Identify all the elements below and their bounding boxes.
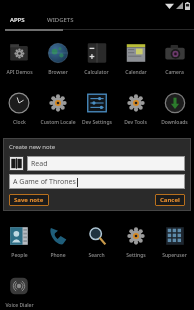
button[interactable]: Settings [116, 219, 155, 261]
button[interactable]: Voice Dialer [0, 269, 38, 310]
staticText: Voice Dialer [5, 302, 34, 308]
button[interactable]: Dev Tools [116, 86, 155, 128]
staticText: Search [88, 252, 105, 259]
button[interactable]: People [0, 219, 38, 261]
staticText: Phone [50, 252, 66, 259]
staticText: People [11, 252, 28, 259]
staticText: Cancel [160, 196, 180, 204]
staticText: APPS [10, 16, 25, 24]
staticText: API Demos [6, 69, 33, 76]
button[interactable]: Read [27, 156, 185, 171]
staticText: Downloads [161, 119, 188, 126]
button[interactable]: Custom Locale [38, 86, 77, 128]
staticText: Custom Locale [40, 119, 76, 126]
staticText: Calendar [125, 69, 147, 76]
staticText: Dev Settings [82, 119, 112, 126]
button[interactable]: Superuser [155, 219, 194, 261]
button[interactable]: Downloads [155, 86, 194, 128]
button[interactable]: Cancel [155, 194, 185, 206]
button[interactable]: Phone [38, 219, 77, 261]
button[interactable]: APPS [10, 16, 25, 24]
staticText: Camera [165, 69, 184, 76]
staticText: Superuser [162, 252, 187, 259]
staticText: A Game of Thrones [13, 177, 76, 187]
button[interactable]: Search [77, 219, 116, 261]
staticText: Dev Tools [124, 119, 147, 126]
button[interactable]: A Game of Thrones [9, 174, 185, 189]
staticText: WIDGETS [47, 16, 74, 24]
staticText: Clock [13, 119, 26, 126]
button[interactable]: Save note [9, 194, 49, 206]
button[interactable]: Camera [155, 36, 194, 78]
button[interactable]: WIDGETS [47, 16, 74, 24]
staticText: Read [31, 159, 48, 169]
staticText: Save note [14, 196, 44, 204]
button[interactable]: Dev Settings [77, 86, 116, 128]
staticText: Browser [48, 69, 68, 76]
button[interactable]: Clock [0, 86, 38, 128]
button[interactable]: Choose icon [9, 156, 24, 171]
button[interactable]: Browser [38, 36, 77, 78]
staticText: Settings [126, 252, 146, 259]
staticText: Create new note [9, 143, 56, 151]
staticText: Calculator [84, 69, 109, 76]
button[interactable]: API Demos [0, 36, 38, 78]
button[interactable]: Calendar [116, 36, 155, 78]
button[interactable]: Calculator [77, 36, 116, 78]
